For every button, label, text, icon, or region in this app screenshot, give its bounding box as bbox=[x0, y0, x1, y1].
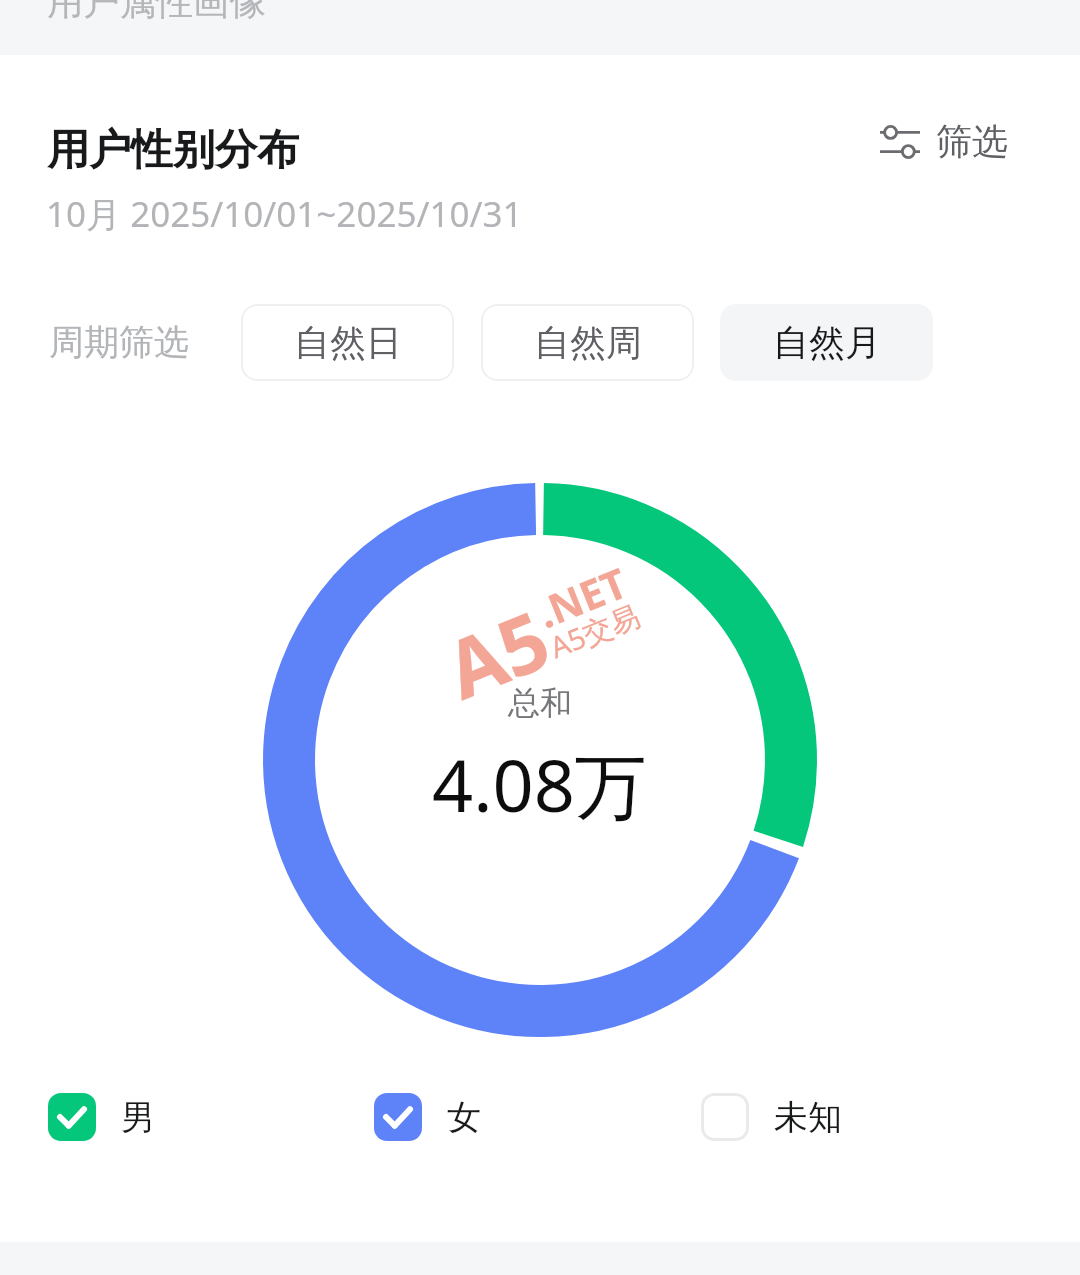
staticText: 用户属性画像 bbox=[47, 0, 266, 25]
button[interactable]: 女 bbox=[374, 1093, 481, 1141]
button[interactable]: 自然周 bbox=[481, 304, 694, 381]
staticText: 女 bbox=[447, 1096, 481, 1139]
staticText: 男 bbox=[121, 1096, 155, 1139]
other: 筛选 bbox=[880, 126, 920, 158]
staticText: 总和 bbox=[508, 683, 572, 723]
button[interactable]: 男 bbox=[48, 1093, 155, 1141]
staticText: 自然月 bbox=[773, 320, 881, 365]
staticText: A5交易 bbox=[544, 595, 646, 667]
staticText: 10月 2025/10/01~2025/10/31 bbox=[46, 190, 523, 238]
staticText: 自然日 bbox=[294, 320, 402, 365]
staticText: A5 bbox=[429, 583, 565, 722]
button[interactable]: 自然月 bbox=[720, 304, 933, 381]
button[interactable]: 自然日 bbox=[241, 304, 454, 381]
staticText: .NET bbox=[529, 554, 635, 640]
staticText: 未知 bbox=[774, 1096, 842, 1139]
staticText: 周期筛选 bbox=[49, 320, 189, 364]
staticText: 4.08万 bbox=[432, 735, 647, 833]
staticText: 筛选 bbox=[936, 119, 1008, 164]
button[interactable]: 未知 bbox=[701, 1093, 842, 1141]
button[interactable]: 筛选 bbox=[872, 111, 1016, 172]
staticText: 自然周 bbox=[534, 320, 642, 365]
staticText: 用户性别分布 bbox=[47, 124, 299, 177]
